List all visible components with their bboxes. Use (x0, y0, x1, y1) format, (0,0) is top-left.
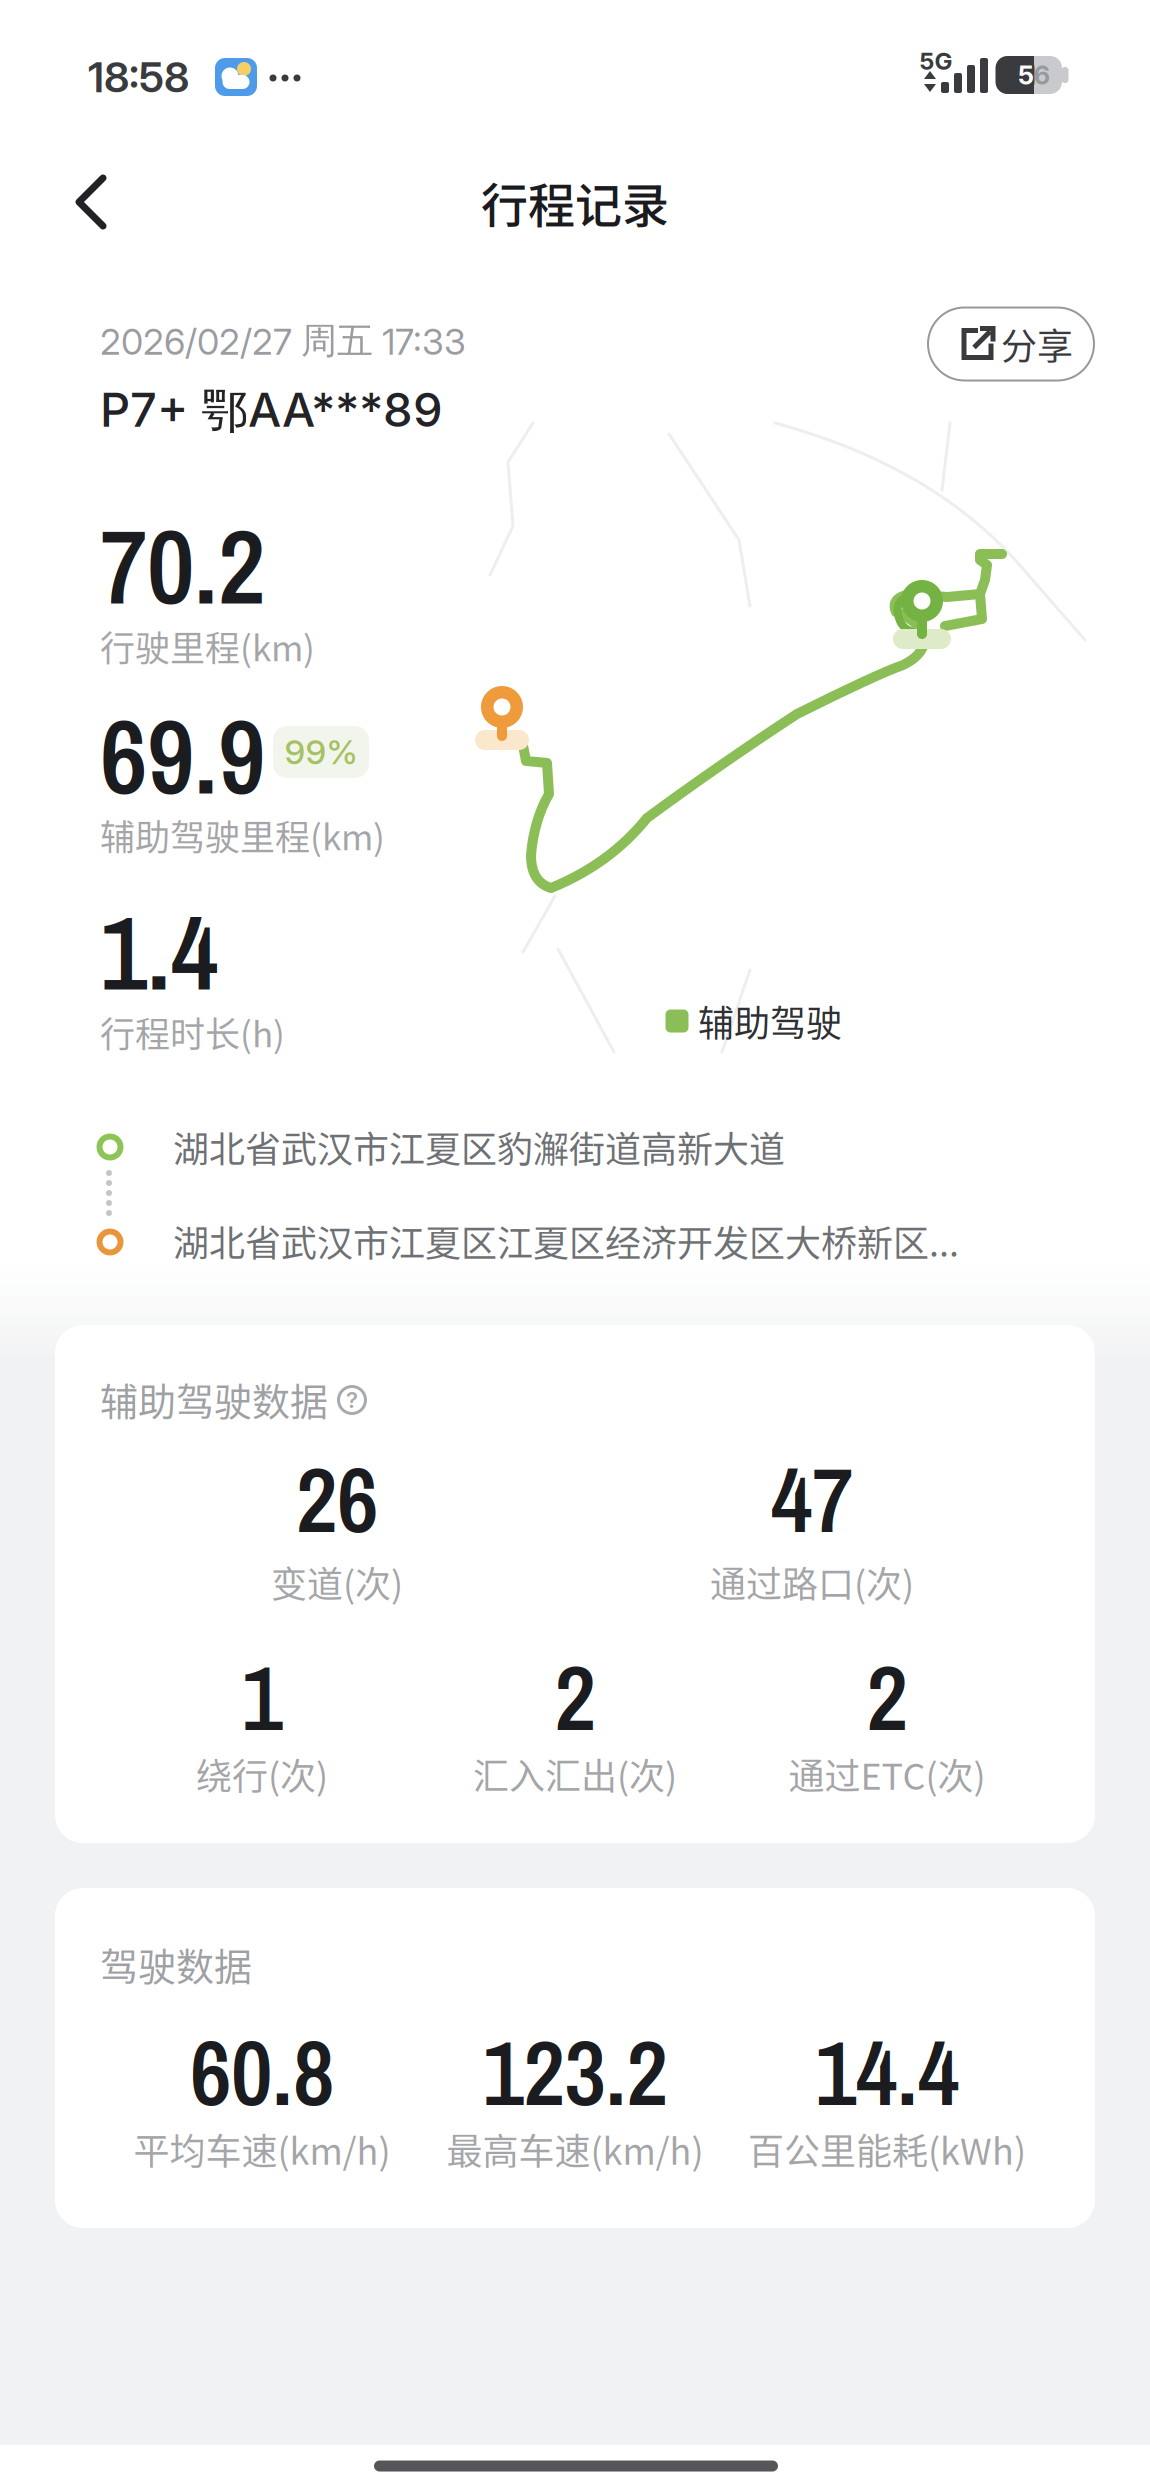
staticText: 47 (771, 1438, 853, 1560)
staticText: 5G (919, 46, 952, 75)
staticText: 18:58 (88, 52, 189, 102)
staticText: 70.2 (100, 496, 265, 636)
button[interactable]: 分享 (927, 306, 1095, 381)
staticText: 绕行(次) (196, 1748, 328, 1800)
staticText: 驾驶数据 (100, 1936, 252, 1991)
staticText: 123.2 (482, 2011, 667, 2133)
staticText: 26 (296, 1438, 378, 1560)
staticText: 分享 (1001, 318, 1073, 370)
staticText: 99% (284, 731, 357, 772)
staticText: 湖北省武汉市江夏区江夏区经济开发区大桥新区... (173, 1215, 959, 1267)
staticText: 2 (866, 1636, 907, 1758)
staticText: 辅助驾驶数据 (100, 1371, 328, 1426)
staticText: 6 (1033, 59, 1050, 91)
staticText: 5 (1018, 59, 1034, 91)
staticText: 湖北省武汉市江夏区豹澥街道高新大道 (173, 1121, 785, 1173)
staticText: 2026/02/27 周五 17:33 (100, 318, 466, 364)
staticText: 1 (241, 1636, 282, 1758)
staticText: 通过路口(次) (710, 1556, 914, 1608)
staticText: 变道(次) (271, 1556, 403, 1608)
staticText: 汇入汇出(次) (473, 1748, 677, 1800)
staticText: 通过ETC(次) (788, 1748, 985, 1800)
staticText: ? (346, 1387, 358, 1413)
staticText: 辅助驾驶 (698, 995, 842, 1047)
staticText: 60.8 (190, 2011, 334, 2133)
staticText: 平均车速(km/h) (133, 2123, 390, 2175)
button[interactable]: ? (332, 1380, 372, 1420)
staticText: 69.9 (100, 686, 265, 826)
staticText: 最高车速(km/h) (446, 2123, 703, 2175)
button[interactable] (53, 166, 141, 238)
staticText: 行程记录 (481, 168, 669, 236)
staticText: 1.4 (100, 882, 218, 1022)
staticText: 行驶里程(km) (100, 621, 315, 671)
staticText: 辅助驾驶里程(km) (100, 810, 385, 860)
staticText: 14.4 (815, 2011, 959, 2133)
staticText: 百公里能耗(kWh) (748, 2123, 1026, 2175)
staticText: 行程时长(h) (100, 1007, 285, 1057)
staticText: P7+ 鄂AA***89 (100, 381, 443, 441)
staticText: 2 (554, 1636, 595, 1758)
